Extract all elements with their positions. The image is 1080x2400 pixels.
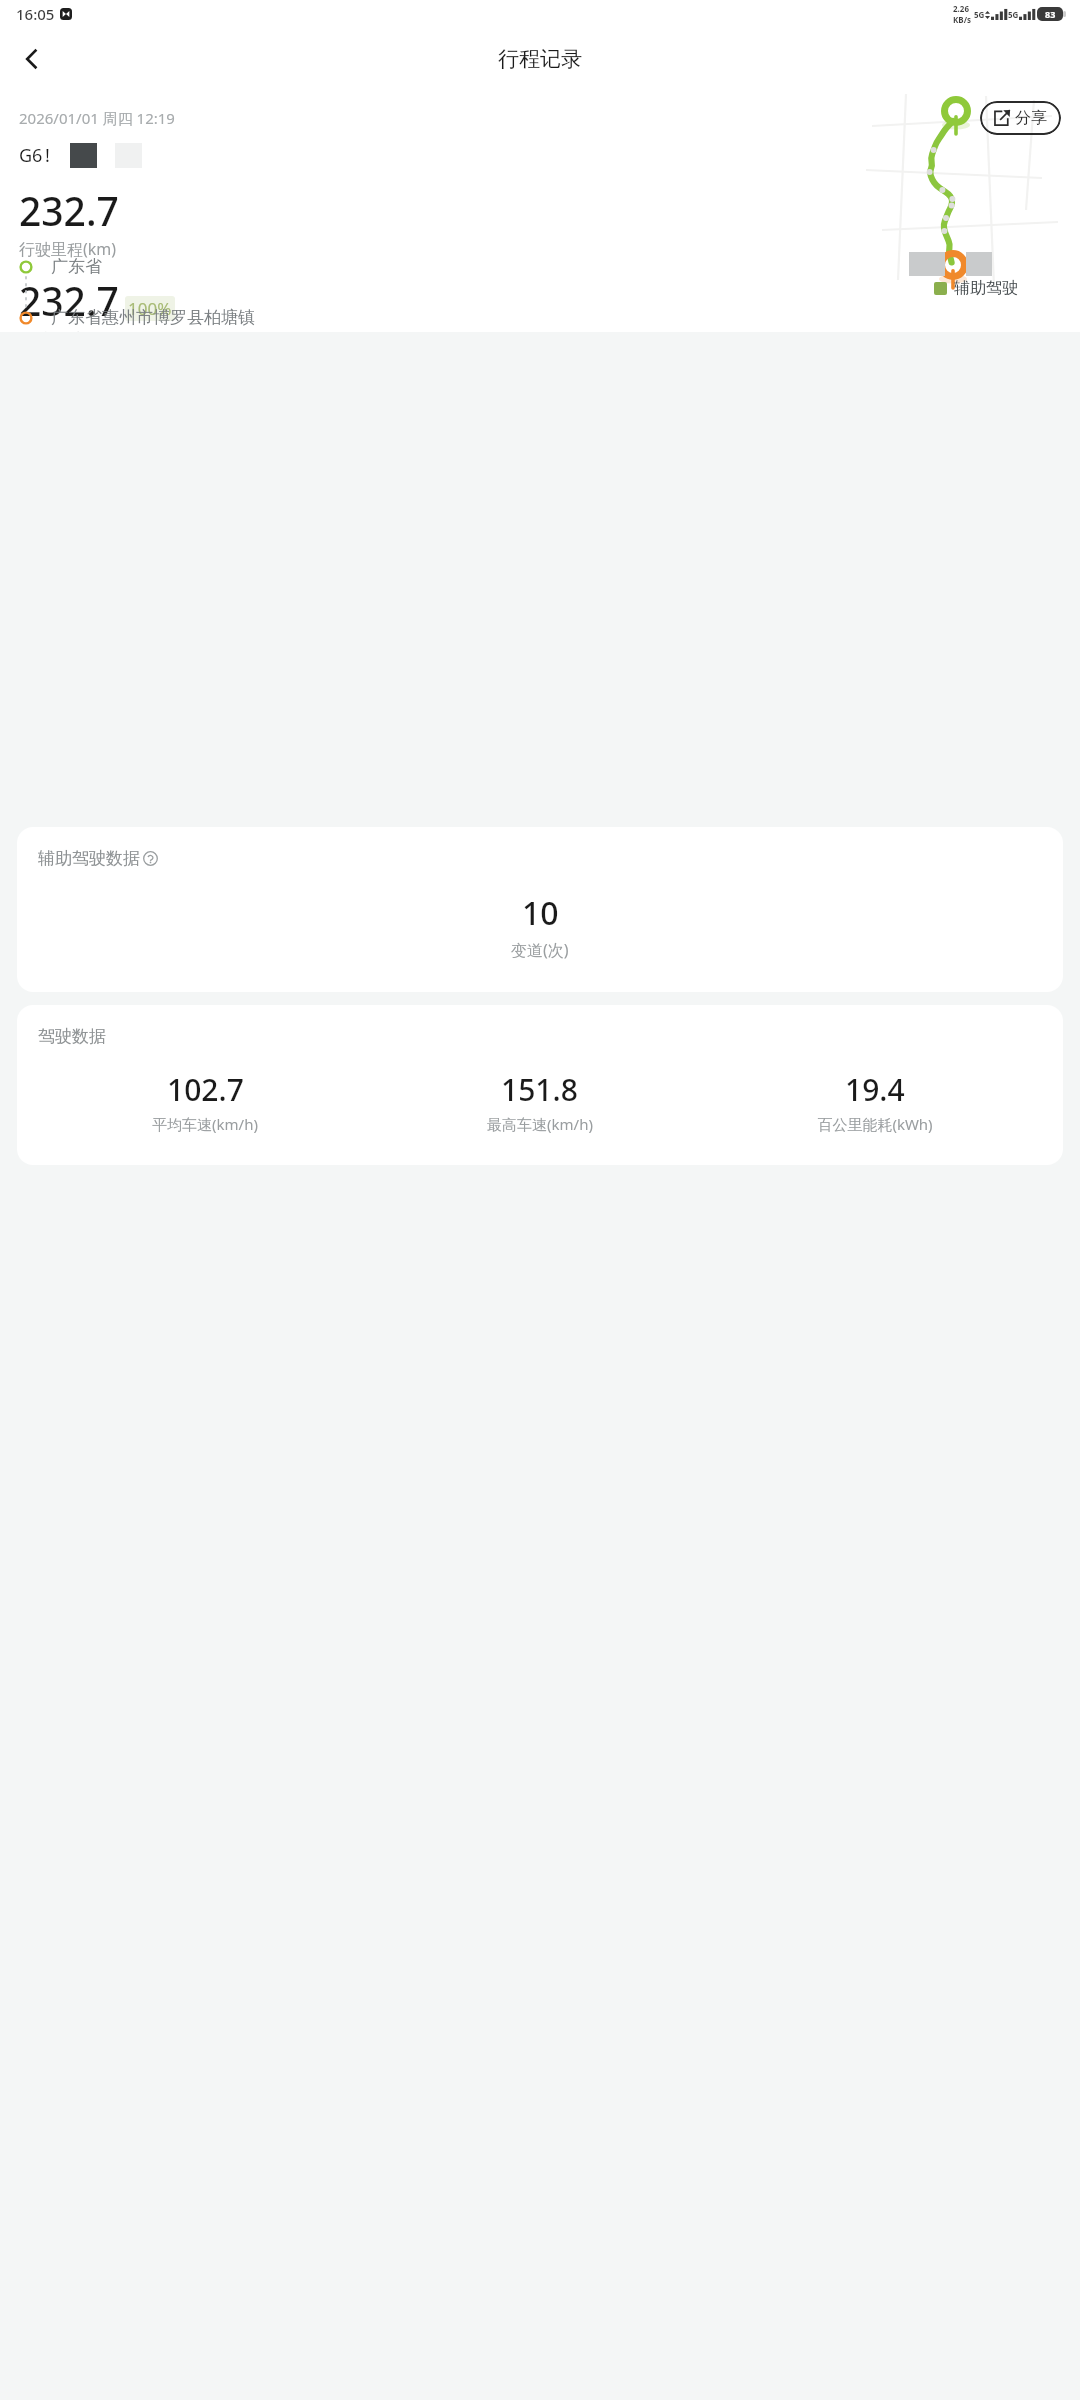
button[interactable]: Back [8, 35, 56, 83]
staticText: 最高车速(km/h) [487, 1114, 593, 1134]
staticText: 2.26 [953, 3, 969, 14]
staticText: 100% [128, 297, 172, 320]
staticText: KB/s [953, 14, 971, 25]
staticText: 辅助驾驶数据 [38, 848, 140, 869]
button[interactable]: 驾驶数据 [17, 1005, 1063, 1165]
staticText: 行程记录 [498, 46, 582, 72]
staticText: 19.4 [845, 1069, 905, 1110]
staticText: G6 [19, 143, 43, 168]
staticText: 辅助驾驶 [954, 278, 1018, 298]
staticText: ! [45, 143, 50, 168]
staticText: 232.7 [19, 274, 119, 327]
staticText: 10 [522, 891, 559, 935]
staticText: 行驶里程(km) [19, 238, 117, 260]
staticText: 5G [1008, 9, 1019, 20]
staticText: 广东省惠州市博罗县柏塘镇 [51, 307, 255, 328]
staticText: 2026/01/01 周四 12:19 [19, 108, 175, 128]
staticText: 驾驶数据 [38, 1026, 106, 1047]
staticText: 102.7 [167, 1069, 244, 1110]
staticText: 5G [974, 9, 985, 20]
staticText: 151.8 [501, 1069, 578, 1110]
staticText: 83 [1045, 8, 1056, 20]
button[interactable]: 分享 [980, 101, 1061, 135]
staticText: 分享 [1015, 108, 1047, 128]
staticText: 变道(次) [511, 939, 569, 961]
staticText: 232.7 [19, 184, 119, 237]
staticText: 平均车速(km/h) [152, 1114, 258, 1134]
staticText: 广东省 [51, 256, 102, 277]
staticText: 百公里能耗(kWh) [817, 1114, 933, 1134]
button[interactable]: 辅助驾驶数据 [17, 827, 1063, 992]
staticText: 16:05 [16, 4, 55, 24]
